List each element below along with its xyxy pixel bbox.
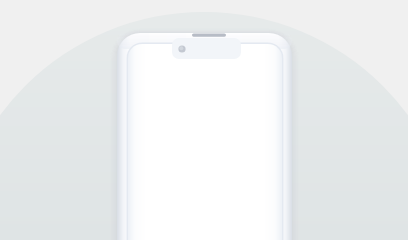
button[interactable]: Phone mockup [0, 0, 408, 240]
